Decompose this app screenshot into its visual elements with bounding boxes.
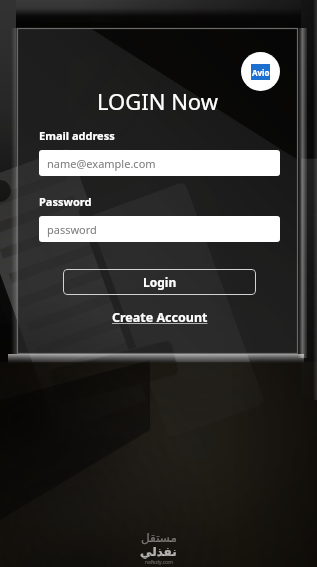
staticText: LOGIN Now <box>17 86 298 116</box>
staticText: Avio <box>252 67 270 78</box>
staticText: nafezly.com <box>145 559 173 566</box>
staticText: name@example.com <box>47 156 156 171</box>
button[interactable]: Create Account <box>112 309 208 326</box>
button[interactable]: name@example.com <box>39 150 280 176</box>
staticText: مستقل <box>141 531 177 545</box>
button[interactable]: password <box>39 216 280 242</box>
button[interactable]: Avio logo <box>241 52 280 91</box>
staticText: نفذلي <box>140 545 177 559</box>
staticText: Login <box>143 274 177 290</box>
staticText: Password <box>39 194 92 209</box>
staticText: password <box>47 222 97 237</box>
button[interactable]: Login <box>63 269 256 295</box>
staticText: Email address <box>39 128 115 143</box>
